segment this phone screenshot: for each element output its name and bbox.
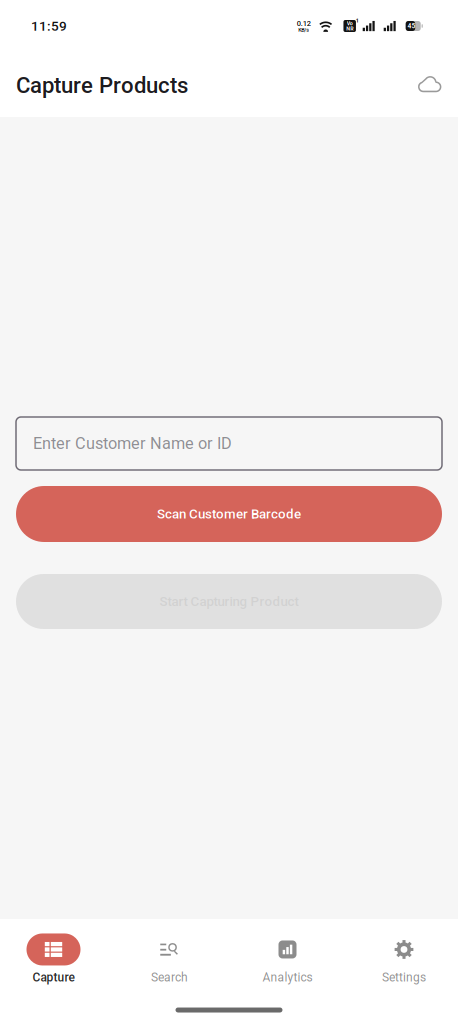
button[interactable]: Analytics xyxy=(232,918,350,1001)
staticText: 11:59 xyxy=(31,18,67,34)
staticText: 0.12 xyxy=(297,19,311,28)
staticText: Settings xyxy=(382,970,426,985)
button[interactable]: Cloud sync xyxy=(410,56,450,105)
staticText: Start Capturing Product xyxy=(159,594,298,609)
staticText: Vo xyxy=(347,20,353,26)
staticText: NR xyxy=(346,25,353,32)
button[interactable]: Settings xyxy=(350,918,458,1001)
button[interactable]: Search xyxy=(107,918,232,1001)
button[interactable]: Start Capturing Product xyxy=(16,574,442,629)
staticText: 1 xyxy=(356,17,359,24)
staticText: Enter Customer Name or ID xyxy=(33,434,232,453)
button[interactable]: Scan Customer Barcode xyxy=(16,486,442,542)
staticText: 45 xyxy=(407,22,415,30)
staticText: Capture Products xyxy=(16,72,188,98)
staticText: Scan Customer Barcode xyxy=(157,506,301,522)
staticText: KB/s xyxy=(298,27,309,33)
staticText: Search xyxy=(151,970,188,985)
staticText: Capture xyxy=(32,970,74,985)
button[interactable]: Capture xyxy=(0,918,107,1001)
staticText: Analytics xyxy=(262,970,312,985)
